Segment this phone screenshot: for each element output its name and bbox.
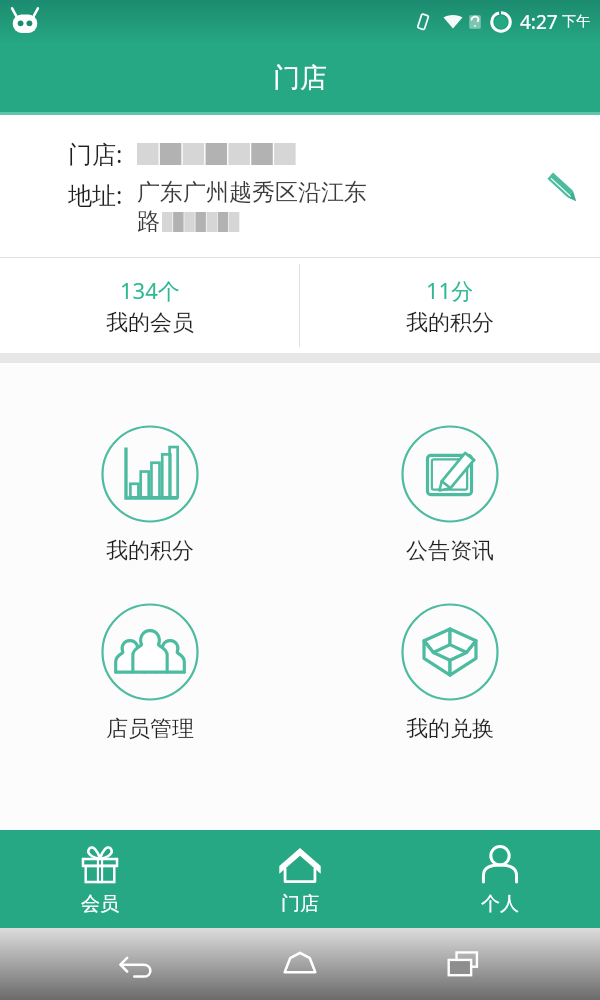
staticText: 广东广州越秀区沿江东 xyxy=(137,178,367,207)
staticText: 路 xyxy=(137,207,160,236)
button[interactable]: 编辑 xyxy=(534,159,588,213)
staticText: 个人 xyxy=(481,892,519,916)
button[interactable]: 我的积分 xyxy=(0,421,300,569)
staticText: 下午 xyxy=(562,13,590,31)
staticText: 店员管理 xyxy=(106,715,194,743)
staticText: 门店 xyxy=(273,61,327,95)
staticText: 会员 xyxy=(81,892,119,916)
button[interactable]: 门店 xyxy=(200,830,400,928)
button[interactable]: 返回 xyxy=(108,936,164,992)
button[interactable]: 会员 xyxy=(0,830,200,928)
button[interactable]: 最近任务 xyxy=(436,936,492,992)
staticText: 我的会员 xyxy=(106,309,194,337)
staticText: 134个 xyxy=(120,275,180,305)
button[interactable]: 134个 xyxy=(0,258,299,353)
staticText: 11分 xyxy=(426,275,474,305)
staticText: 门店 xyxy=(281,892,319,916)
button[interactable]: 我的兑换 xyxy=(300,599,600,747)
button[interactable]: 店员管理 xyxy=(0,599,300,747)
button[interactable]: 个人 xyxy=(400,830,600,928)
button[interactable]: 门店: xyxy=(0,115,600,257)
staticText: 我的兑换 xyxy=(406,715,494,743)
staticText: 4:27 xyxy=(520,9,558,35)
staticText: 地址: xyxy=(68,178,123,211)
button[interactable]: 11分 xyxy=(300,258,600,353)
staticText: 门店: xyxy=(68,137,123,170)
button[interactable]: 公告资讯 xyxy=(300,421,600,569)
staticText: 我的积分 xyxy=(106,537,194,565)
button[interactable]: 主页 xyxy=(272,936,328,992)
staticText: 我的积分 xyxy=(406,309,494,337)
staticText: 公告资讯 xyxy=(406,537,494,565)
